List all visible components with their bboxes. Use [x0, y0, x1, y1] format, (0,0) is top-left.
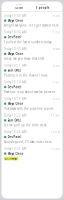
staticText: Today 10:09 AM: [4, 47, 26, 51]
staticText: 3:40: [53, 47, 60, 51]
staticText: Duration: [16, 4, 22, 5]
staticText: Today 10:06 AM: [4, 30, 26, 34]
staticText: Maya Chen: [8, 102, 24, 105]
staticText: Great, can you share that link?: [4, 57, 44, 60]
staticText: Today 10:14 AM: [4, 80, 26, 84]
staticText: 5:02: [53, 64, 60, 67]
button[interactable]: Today 10:18 AM: [4, 97, 60, 110]
staticText: 13:18: [51, 130, 60, 134]
staticText: 12:48: [14, 6, 23, 9]
staticText: 11:07: [51, 114, 60, 117]
button[interactable]: Today 10:14 AM: [4, 80, 60, 94]
button[interactable]: Today 10:06 AM: [4, 30, 60, 44]
staticText: Maya Chen: [8, 52, 24, 56]
staticText: Revenue is up about twelve percent.: [4, 90, 56, 94]
staticText: Maya Chen: [8, 19, 24, 22]
staticText: 0:00: [53, 14, 60, 17]
staticText: Today 10:26 AM: [4, 130, 26, 134]
button[interactable]: Today 10:26 AM: [4, 130, 60, 144]
staticText: 1:12: [53, 30, 60, 34]
staticText: Dev Patel: [8, 35, 22, 39]
staticText: Maya Chen: [8, 152, 24, 155]
staticText: Today 10:11 AM: [4, 64, 26, 67]
button[interactable]: Today 10:09 AM: [4, 47, 60, 61]
button[interactable]: Today 10:11 AM: [4, 64, 60, 77]
staticText: Sam Ortiz: [8, 119, 21, 122]
staticText: Today 10:18 AM: [4, 97, 26, 100]
staticText: Let's wrap: [5, 157, 18, 160]
staticText: 9:33: [53, 97, 60, 100]
button[interactable]: Today 10:22 AM: [4, 114, 60, 127]
staticText: 7:21: [53, 80, 60, 84]
staticText: Speakers: [39, 4, 47, 5]
staticText: I pulled the latest numbers today.: [4, 40, 52, 44]
staticText: Today 10:31 AM: [4, 147, 26, 150]
staticText: 3 people: [36, 6, 50, 9]
staticText: Sounds good, I'll take notes here.: [4, 140, 53, 144]
button[interactable]: Today 10:31 AM: [4, 147, 60, 160]
staticText: Posting it in the channel now.: [4, 74, 48, 77]
staticText: That tracks with the pipeline report.: [4, 107, 54, 110]
staticText: Alright everyone, let's get started here…: [4, 24, 60, 27]
staticText: 15:45: [51, 147, 60, 150]
staticText: Dev Patel: [8, 135, 22, 139]
staticText: Sam Ortiz: [8, 69, 21, 72]
staticText: Today 10:22 AM: [4, 114, 26, 117]
staticText: Today 10:04 AM: [4, 14, 26, 17]
staticText: Dev Patel: [8, 85, 22, 89]
button[interactable]: Today 10:04 AM: [4, 14, 60, 27]
staticText: Let me pull up the slide deck.: [4, 123, 47, 127]
